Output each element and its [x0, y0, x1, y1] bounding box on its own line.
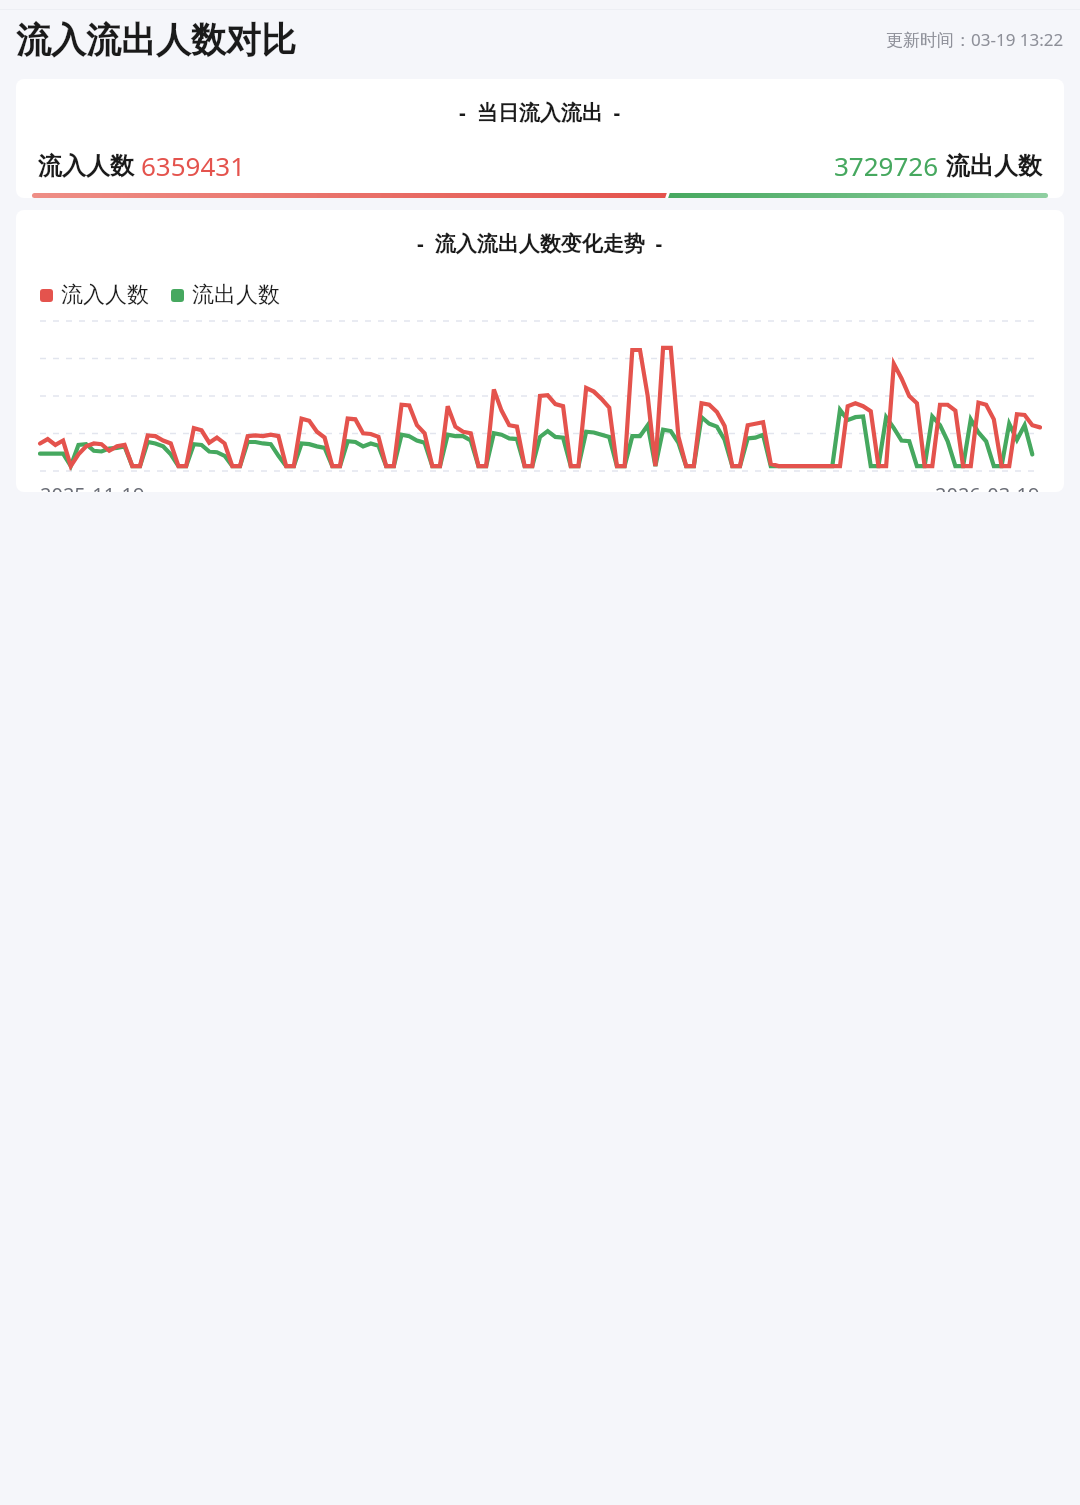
- button[interactable]: - 流入流出人数变化走势 -: [16, 210, 1064, 492]
- staticText: 流入流出人数对比: [16, 18, 296, 62]
- staticText: 流出人数: [946, 151, 1042, 181]
- staticText: - 当日流入流出 -: [459, 98, 621, 127]
- staticText: 2025-11-19: [40, 481, 145, 492]
- staticText: 6359431: [141, 148, 246, 183]
- staticText: 流入人数: [38, 151, 134, 181]
- staticText: 流入人数: [61, 281, 149, 309]
- staticText: 流出人数: [192, 281, 280, 309]
- staticText: 更新时间：03-19 13:22: [886, 28, 1064, 51]
- staticText: 3729726: [834, 148, 939, 183]
- staticText: 2026-03-19: [935, 481, 1040, 492]
- button[interactable]: - 当日流入流出 -: [16, 79, 1064, 198]
- staticText: - 流入流出人数变化走势 -: [417, 229, 663, 258]
